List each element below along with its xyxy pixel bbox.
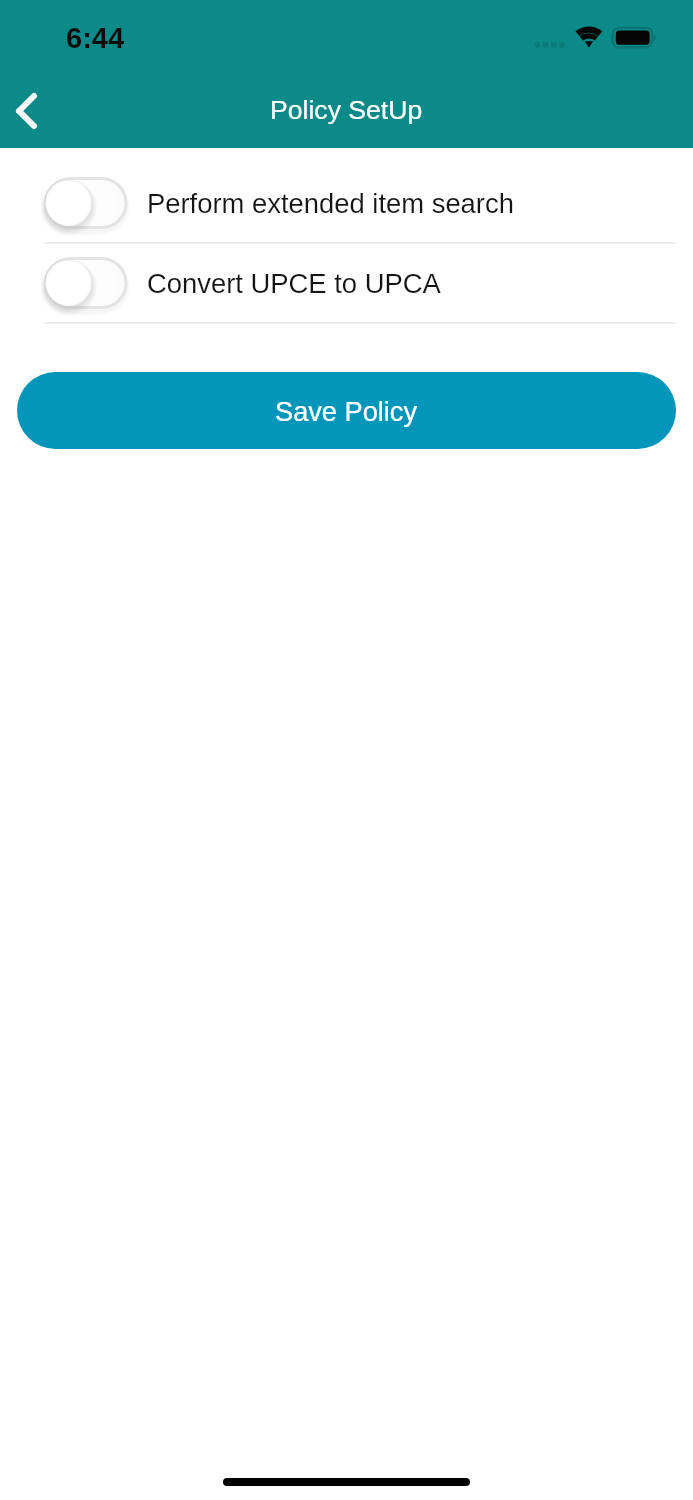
- staticText: Save Policy: [275, 396, 418, 426]
- staticText: Policy SetUp: [270, 95, 423, 125]
- button[interactable]: Save Policy: [17, 372, 676, 449]
- staticText: Perform extended item search: [147, 188, 514, 219]
- button[interactable]: Toggle Perform extended item search: [0, 164, 693, 244]
- button[interactable]: Toggle Convert UPCE to UPCA: [38, 248, 134, 318]
- button[interactable]: Toggle Perform extended item search: [38, 168, 134, 238]
- staticText: Convert UPCE to UPCA: [147, 268, 441, 299]
- button[interactable]: Back: [0, 78, 52, 143]
- staticText: 6:44: [66, 22, 125, 54]
- button[interactable]: Toggle Convert UPCE to UPCA: [0, 244, 693, 324]
